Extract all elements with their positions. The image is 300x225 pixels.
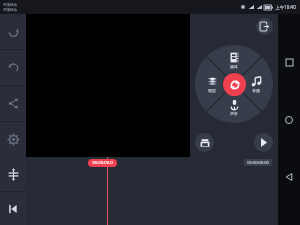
button[interactable]: Capture — [195, 133, 214, 152]
button[interactable]: Share — [0, 86, 26, 121]
button[interactable]: Go to start — [0, 192, 26, 225]
button[interactable]: Redo — [0, 50, 26, 85]
button[interactable]: 图层 — [200, 76, 224, 93]
button[interactable]: 00:00:00.0 — [26, 157, 278, 225]
button[interactable]: 声音 — [222, 99, 246, 116]
staticText: 音频 — [252, 88, 260, 93]
button[interactable]: Recents — [279, 52, 299, 72]
button[interactable]: 音频 — [244, 76, 268, 93]
button[interactable]: Back — [279, 167, 299, 187]
button[interactable]: 00:00:00.0 — [92, 160, 113, 166]
button[interactable]: Expand timeline — [0, 157, 26, 191]
staticText: 00:00:00:00 — [247, 160, 269, 165]
staticText: 中国移动 — [3, 8, 17, 12]
button[interactable]: Play — [254, 133, 273, 152]
button[interactable]: Export — [256, 18, 273, 35]
button[interactable]: Settings — [0, 122, 26, 157]
staticText: 媒体 — [230, 64, 238, 69]
staticText: 中国移动 — [3, 3, 17, 7]
staticText: 图层 — [208, 88, 216, 93]
button[interactable]: Home — [279, 110, 299, 130]
button[interactable]: Record — [223, 73, 246, 96]
staticText: 上午10:40 — [275, 4, 296, 10]
button[interactable]: 媒体 — [222, 52, 246, 69]
staticText: 00:00:00.0 — [92, 160, 113, 166]
button[interactable]: Undo — [0, 14, 26, 49]
staticText: 声音 — [230, 111, 238, 116]
